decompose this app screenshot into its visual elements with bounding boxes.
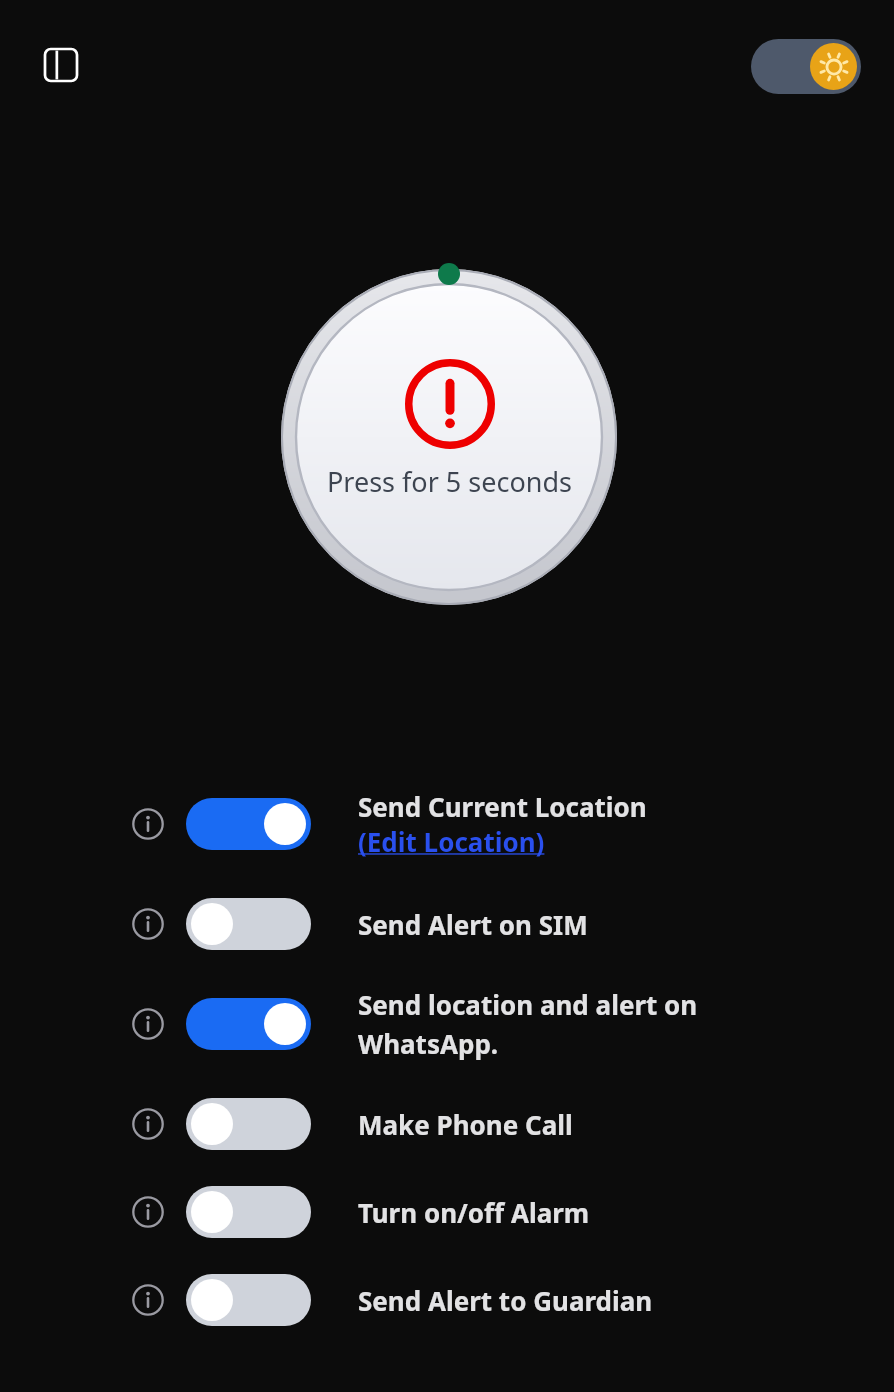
staticText: Turn on/off Alarm <box>358 1195 703 1230</box>
button[interactable]: Info: Send Alert on SIM <box>132 908 164 940</box>
button[interactable]: (Edit Location) <box>358 824 545 859</box>
button[interactable]: Info: Send Alert to Guardian <box>0 1256 894 1344</box>
button[interactable]: Switch theme <box>751 39 861 94</box>
button[interactable]: Info: Send Current Location <box>132 808 164 840</box>
button[interactable]: Info: Send Current Location <box>0 780 894 868</box>
button[interactable]: Info: Make Phone Call <box>0 1080 894 1168</box>
button[interactable]: Info: Turn on/off Alarm <box>0 1168 894 1256</box>
button[interactable]: Send Current Location <box>186 798 311 850</box>
staticText: Send Current Location <box>358 789 703 824</box>
button[interactable]: Toggle side panel <box>40 44 82 86</box>
staticText: Make Phone Call <box>358 1107 703 1142</box>
button[interactable]: Make Phone Call <box>186 1098 311 1150</box>
button[interactable]: Info: Send location and alert on WhatsAp… <box>132 1008 164 1040</box>
button[interactable]: Info: Turn on/off Alarm <box>132 1196 164 1228</box>
button[interactable]: Info: Send Alert on SIM <box>0 880 894 968</box>
button[interactable]: Send Alert to Guardian <box>186 1274 311 1326</box>
staticText: Send Alert to Guardian <box>358 1283 703 1318</box>
button[interactable]: Send Alert on SIM <box>186 898 311 950</box>
button[interactable]: Press for 5 seconds <box>281 269 617 605</box>
button[interactable]: Send location and alert on WhatsApp. <box>186 998 311 1050</box>
button[interactable]: Info: Send location and alert on WhatsAp… <box>0 980 894 1068</box>
staticText: Press for 5 seconds <box>327 463 572 500</box>
staticText: Send location and alert on WhatsApp. <box>358 987 703 1062</box>
button[interactable]: Info: Send Alert to Guardian <box>132 1284 164 1316</box>
staticText: Send Alert on SIM <box>358 907 703 942</box>
button[interactable]: Turn on/off Alarm <box>186 1186 311 1238</box>
button[interactable]: Info: Make Phone Call <box>132 1108 164 1140</box>
